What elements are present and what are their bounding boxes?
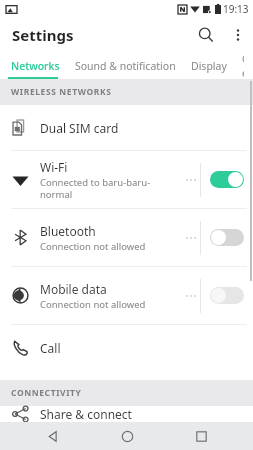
staticText: General	[242, 52, 244, 79]
staticText: Mobile data	[40, 281, 107, 297]
button[interactable]: Wi-Fi	[0, 151, 200, 208]
button[interactable]: Recent apps	[178, 422, 224, 450]
button[interactable]: Call	[0, 325, 253, 370]
staticText: Connection not allowed	[40, 298, 146, 311]
staticText: 19:13	[223, 2, 249, 16]
button[interactable]: Display	[188, 59, 230, 73]
staticText: Connected to baru-baru- normal	[40, 176, 151, 201]
staticText: Call	[40, 340, 61, 356]
staticText: Share & connect	[40, 406, 132, 422]
button[interactable]: Wi-Fi switch	[201, 151, 253, 208]
button[interactable]: Dual SIM card	[0, 105, 253, 150]
staticText: CONNECTIVITY	[11, 387, 82, 399]
button[interactable]: Back	[29, 422, 75, 450]
button[interactable]: Mobile data switch	[201, 267, 253, 324]
staticText: Wi-Fi	[40, 159, 68, 175]
staticText: Bluetooth	[40, 223, 96, 239]
button[interactable]: Bluetooth	[0, 209, 200, 266]
button[interactable]: Sound & notification	[72, 59, 179, 73]
button[interactable]: Share & connect	[0, 406, 253, 422]
staticText: Connection not allowed	[40, 240, 146, 253]
staticText: Settings	[12, 25, 74, 45]
button[interactable]: Bluetooth switch	[201, 209, 253, 266]
staticText: Networks	[11, 59, 60, 73]
button[interactable]: More options	[223, 20, 253, 50]
staticText: Sound & notification	[75, 59, 176, 73]
button[interactable]: Networks	[8, 59, 63, 73]
button[interactable]: Mobile data	[0, 267, 200, 324]
staticText: Display	[191, 59, 227, 73]
button[interactable]: Home	[104, 422, 150, 450]
button[interactable]: General	[239, 52, 247, 79]
staticText: WIRELESS NETWORKS	[11, 86, 112, 98]
button[interactable]: Search	[189, 18, 223, 52]
staticText: Dual SIM card	[40, 120, 119, 136]
